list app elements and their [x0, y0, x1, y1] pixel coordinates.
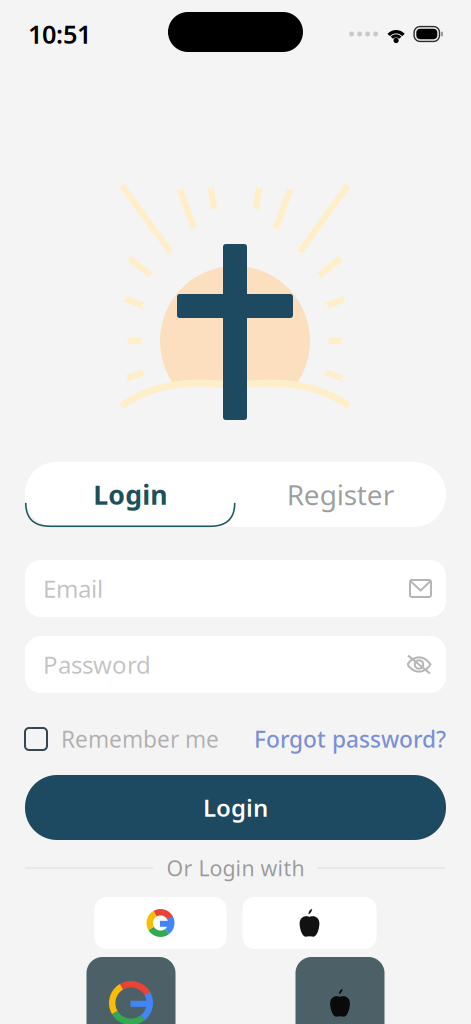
button[interactable]: Login: [25, 462, 235, 527]
staticText: Password: [43, 649, 151, 680]
button[interactable]: Continue with Apple: [242, 897, 376, 949]
button[interactable]: Remember me: [25, 724, 219, 754]
staticText: Email: [43, 573, 103, 604]
button[interactable]: Continue with Google: [94, 897, 226, 949]
button[interactable]: Forgot password?: [254, 724, 446, 754]
staticText: Or Login with: [166, 854, 304, 882]
button[interactable]: Register: [235, 462, 446, 527]
staticText: 10:51: [28, 17, 91, 51]
button[interactable]: Login: [25, 775, 446, 840]
staticText: Login: [93, 477, 167, 512]
staticText: Register: [287, 476, 395, 513]
button[interactable]: Google: [86, 957, 175, 1024]
staticText: Login: [203, 792, 268, 823]
staticText: Forgot password?: [254, 724, 446, 754]
staticText: Remember me: [61, 724, 219, 754]
button[interactable]: Apple: [295, 957, 384, 1024]
